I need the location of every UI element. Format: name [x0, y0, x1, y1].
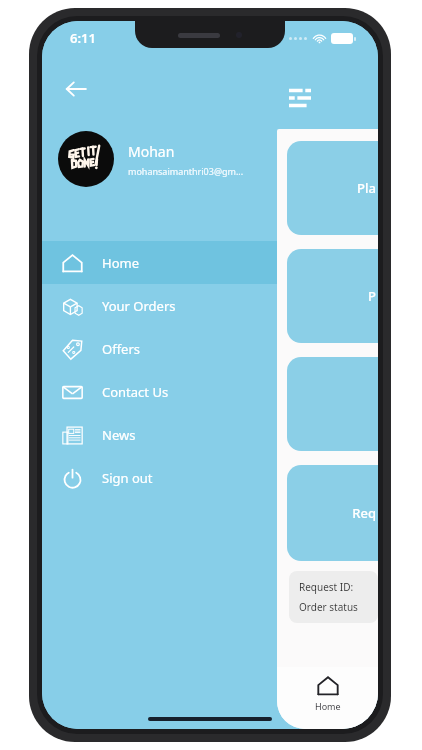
button[interactable]: Back: [54, 67, 98, 111]
button[interactable]: Contact Us: [42, 370, 277, 413]
staticText: Contact Us: [102, 383, 169, 401]
staticText: P: [368, 287, 376, 305]
staticText: Home: [315, 700, 341, 712]
staticText: News: [102, 426, 136, 444]
button[interactable]: P: [287, 249, 378, 343]
button[interactable]: Req: [287, 465, 378, 561]
staticText: Home: [102, 254, 139, 272]
button[interactable]: News: [42, 413, 277, 456]
button[interactable]: Sign out: [42, 456, 277, 499]
button[interactable]: Your Orders: [42, 284, 277, 327]
staticText: Req: [352, 504, 376, 522]
staticText: Order status: [299, 600, 358, 614]
staticText: Pla: [357, 179, 376, 197]
staticText: Request ID:: [299, 580, 354, 594]
staticText: mohansaimanthri03@gm...: [128, 165, 244, 177]
button[interactable]: Request ID:: [289, 571, 378, 623]
staticText: 6:11: [70, 29, 96, 47]
button[interactable]: [287, 357, 378, 451]
staticText: Offers: [102, 340, 141, 358]
button[interactable]: Mohan: [42, 125, 277, 193]
button[interactable]: Home: [315, 675, 341, 712]
staticText: Sign out: [102, 469, 153, 487]
button[interactable]: Open menu: [281, 79, 319, 117]
staticText: Mohan: [128, 142, 175, 161]
staticText: Your Orders: [102, 297, 176, 315]
button[interactable]: Home: [42, 241, 277, 284]
button[interactable]: Offers: [42, 327, 277, 370]
button[interactable]: Pla: [287, 141, 378, 235]
